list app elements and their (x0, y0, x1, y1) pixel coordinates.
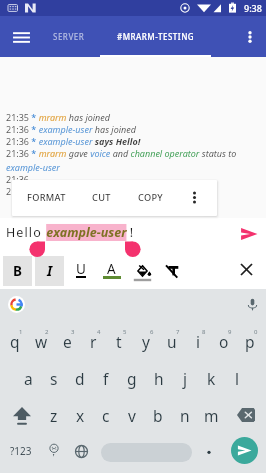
staticText: s (50, 368, 58, 389)
button[interactable]: Emoji (42, 433, 66, 469)
button[interactable]: m (198, 397, 224, 433)
button[interactable]: f (93, 360, 119, 396)
staticText: v (128, 405, 136, 426)
staticText: 2 (45, 328, 49, 336)
button[interactable]: Formatting option (159, 256, 188, 286)
staticText: k (207, 368, 216, 389)
button[interactable]: g (119, 360, 145, 396)
staticText: x (76, 405, 85, 426)
button[interactable]: o (211, 323, 237, 359)
button[interactable]: q (2, 323, 28, 359)
button[interactable]: l (224, 360, 250, 396)
staticText: j (183, 368, 187, 389)
button[interactable]: v (119, 397, 145, 433)
button[interactable]: e (54, 323, 80, 359)
button[interactable]: Close formatting bar (234, 257, 259, 282)
button[interactable]: z (41, 397, 67, 433)
button[interactable]: Backspace (231, 397, 261, 433)
staticText: Hello example-user ! (6, 224, 134, 241)
staticText: CUT (92, 191, 111, 204)
staticText: 21:36 * mrarm gave voice and channel ope… (6, 147, 260, 173)
button[interactable]: CUT (82, 180, 120, 214)
staticText: h (154, 368, 164, 389)
button[interactable]: h (146, 360, 172, 396)
button[interactable]: c (93, 397, 119, 433)
staticText: i (196, 331, 200, 352)
staticText: 4 (97, 328, 101, 336)
staticText: f (103, 368, 109, 389)
staticText: 1 (19, 328, 23, 336)
staticText: q (10, 331, 20, 352)
staticText: ?123 (10, 444, 32, 458)
button[interactable]: j (172, 360, 198, 396)
staticText: c (102, 405, 110, 426)
staticText: e (63, 331, 72, 352)
staticText: l (235, 368, 239, 389)
button[interactable]: n (172, 397, 198, 433)
staticText: B (13, 262, 22, 280)
button[interactable]: i (185, 323, 211, 359)
button[interactable]: Space (101, 443, 192, 462)
button[interactable]: Send (231, 437, 258, 464)
button[interactable]: Open navigation drawer (7, 23, 35, 51)
staticText: 9:38 (244, 2, 262, 14)
staticText: b (153, 405, 163, 426)
staticText: a (24, 368, 33, 389)
button[interactable]: s (41, 360, 67, 396)
staticText: 7 (176, 328, 180, 336)
button[interactable]: a (15, 360, 41, 396)
staticText: g (127, 368, 137, 389)
button[interactable]: d (67, 360, 93, 396)
button[interactable]: y (133, 323, 159, 359)
button[interactable]: Formatting option (3, 256, 32, 286)
staticText: m (204, 405, 219, 426)
staticText: 21:36 * example-user has joined (6, 123, 136, 135)
button[interactable]: FORMAT (18, 180, 74, 214)
staticText: 21:37 (6, 185, 32, 197)
staticText: 3 (71, 328, 75, 336)
staticText: 5 (123, 328, 127, 336)
button[interactable]: ?123 (2, 433, 40, 469)
button[interactable]: k (198, 360, 224, 396)
staticText: COPY (138, 191, 164, 204)
button[interactable]: Formatting option (35, 256, 64, 286)
staticText: d (75, 368, 85, 389)
button[interactable]: Send message (236, 221, 262, 247)
button[interactable]: Change keyboard language (69, 433, 93, 469)
staticText: n (180, 405, 190, 426)
staticText: 21:36 (6, 173, 32, 185)
button[interactable]: Voice input (242, 294, 262, 314)
button[interactable]: Period (198, 433, 220, 469)
button[interactable]: b (145, 397, 171, 433)
staticText: 0 (254, 328, 258, 336)
button[interactable]: Shift (7, 398, 37, 434)
staticText: 6 (150, 328, 154, 336)
button[interactable]: w (28, 323, 54, 359)
button[interactable]: u (159, 323, 185, 359)
staticText: u (167, 331, 177, 352)
button[interactable]: COPY (128, 180, 174, 214)
staticText: o (219, 331, 229, 352)
button[interactable]: r (80, 323, 106, 359)
staticText: 21:35 * mrarm has joined (6, 111, 111, 123)
staticText: 21:36 * example-user says Hello! (6, 135, 141, 147)
button[interactable]: SERVER (46, 16, 91, 57)
staticText: z (50, 405, 58, 426)
button[interactable]: p (237, 323, 263, 359)
button[interactable]: Formatting option (97, 256, 126, 286)
button[interactable]: Google search (8, 296, 25, 313)
button[interactable]: #MRARM-TESTING (100, 16, 211, 57)
staticText: U (76, 260, 86, 278)
staticText: 9 (228, 328, 232, 336)
staticText: w (35, 331, 48, 352)
button[interactable]: t (106, 323, 132, 359)
button[interactable]: More options (237, 24, 263, 50)
staticText: t (116, 331, 122, 352)
button[interactable]: Formatting option (128, 256, 157, 286)
staticText: 8 (202, 328, 206, 336)
staticText: SERVER (53, 31, 85, 42)
button[interactable]: Formatting option (66, 256, 95, 286)
staticText: FORMAT (27, 191, 66, 204)
button[interactable]: x (67, 397, 93, 433)
button[interactable]: More selection options (182, 180, 206, 214)
